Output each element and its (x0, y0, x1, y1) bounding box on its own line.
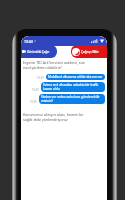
button[interactable]: Evime sed cihazdan sokakta bir trafik ka… (41, 82, 105, 92)
staticText: Sizdan ver ordex anbulans gönderebilir m… (41, 95, 103, 103)
staticText: 10:05 (30, 100, 37, 104)
button[interactable]: Mobilinet cihazıma ait bir durum var (46, 74, 105, 80)
staticText: Evime sed cihazdan sokakta bir trafik ka… (43, 83, 103, 91)
button[interactable]: Görüntülü Çağrı (21, 45, 57, 58)
staticText: Ergetici TID Acil Servisini aradınız, si… (23, 60, 86, 70)
staticText: 10:05 (37, 76, 44, 80)
staticText: Çağrıyı Bitir (81, 50, 99, 54)
staticText: Konumunuz alınıyor alanı, hemen bir sağl… (23, 112, 84, 122)
button[interactable]: Sizdan ver ordex anbulans gönderebilir m… (39, 94, 105, 104)
staticText: 10:05 (32, 88, 39, 92)
staticText: 10:04 (24, 39, 33, 44)
staticText: Mobilinet cihazıma ait bir durum var (48, 75, 103, 79)
button[interactable]: Çağrıyı Bitir (71, 45, 107, 58)
staticText: Görüntülü Çağrı (27, 50, 50, 54)
